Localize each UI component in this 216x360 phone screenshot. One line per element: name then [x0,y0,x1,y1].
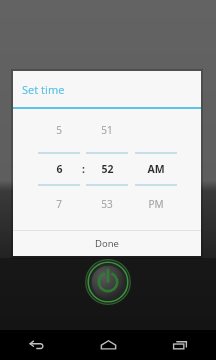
button[interactable]: AM [140,162,172,176]
button[interactable]: PM [140,197,172,211]
staticText: 51 [101,123,113,137]
staticText: PM [148,197,164,211]
button[interactable]: 6 [43,162,75,176]
button[interactable]: 52 [91,162,123,176]
staticText: 5 [56,123,62,137]
button[interactable]: Recent apps [144,330,216,360]
staticText: : [82,162,85,176]
button[interactable]: 5 [43,123,75,137]
button[interactable]: 51 [91,123,123,137]
staticText: AM [147,162,165,176]
button[interactable]: 53 [91,197,123,211]
staticText: Set time [22,82,65,97]
staticText: 53 [101,197,113,211]
staticText: Done [95,237,119,250]
button[interactable]: 7 [43,197,75,211]
staticText: 52 [101,162,114,176]
button[interactable]: Done [13,231,201,256]
staticText: 6 [56,162,63,176]
button[interactable]: : [67,162,99,176]
staticText: 7 [56,197,62,211]
button[interactable]: Home [72,330,144,360]
button[interactable]: Back [0,330,72,360]
